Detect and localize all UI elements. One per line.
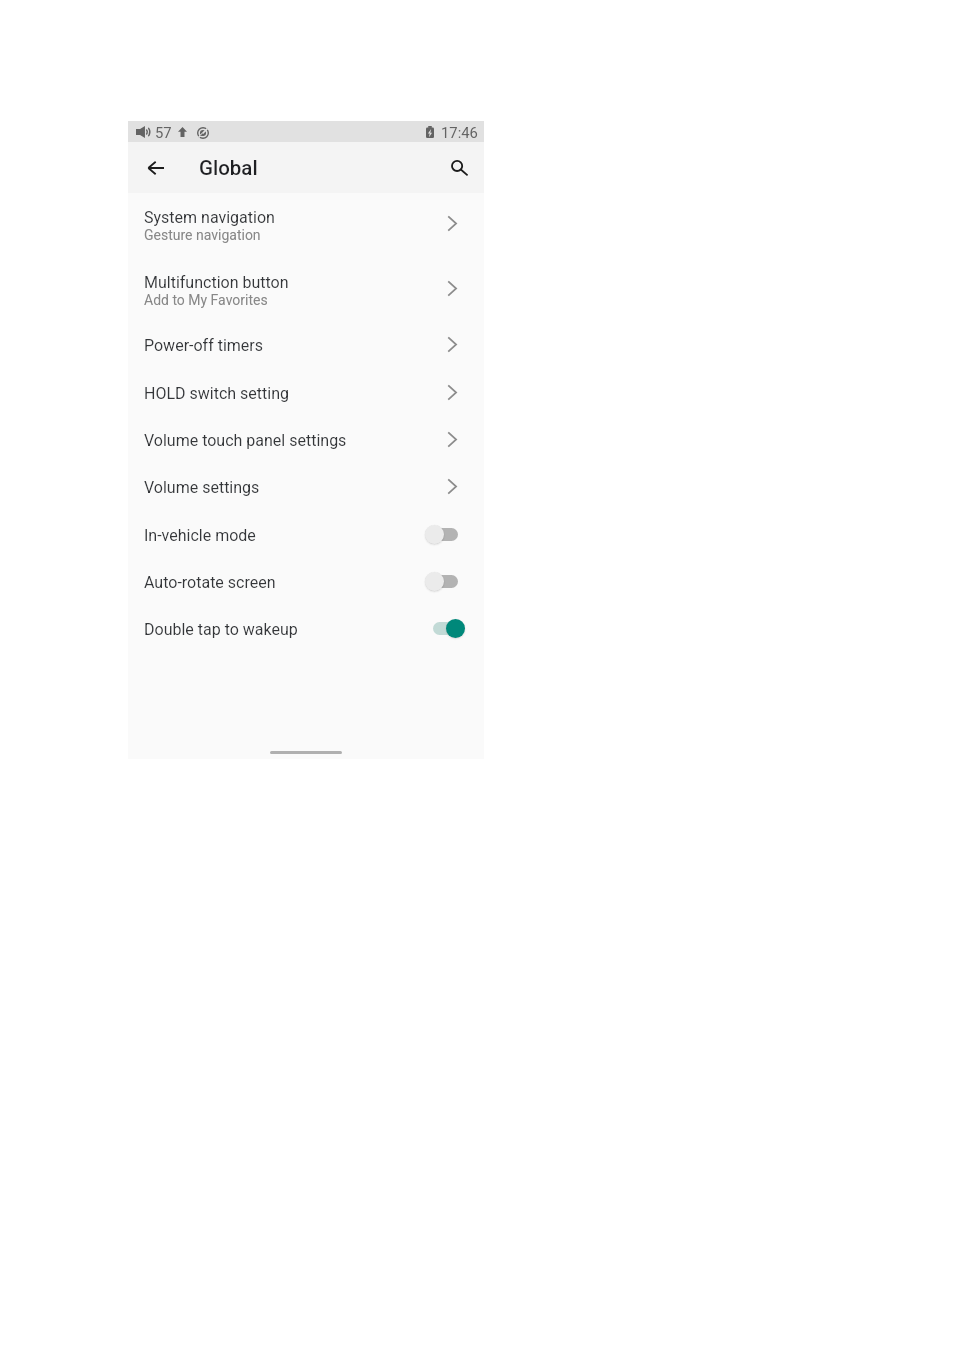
staticText: Volume touch panel settings	[144, 431, 347, 450]
staticText: Multifunction button	[144, 273, 289, 292]
button[interactable]: Volume touch panel settings	[128, 422, 484, 469]
button[interactable]: Double tap to wakeup	[425, 619, 465, 638]
button[interactable]: Navigate up	[136, 148, 176, 188]
button[interactable]: In-vehicle mode	[128, 517, 484, 564]
button[interactable]: System navigation	[128, 194, 484, 258]
button[interactable]: Auto-rotate screen	[425, 572, 465, 591]
staticText: Global	[199, 156, 258, 180]
staticText: In-vehicle mode	[144, 526, 256, 545]
button[interactable]: Double tap to wakeup	[128, 611, 484, 658]
staticText: 17:46	[441, 124, 478, 141]
staticText: HOLD switch setting	[144, 384, 289, 403]
button[interactable]: Volume settings	[128, 469, 484, 516]
staticText: Power-off timers	[144, 336, 264, 355]
staticText: Auto-rotate screen	[144, 573, 276, 592]
staticText: Double tap to wakeup	[144, 620, 298, 639]
button[interactable]: In-vehicle mode	[425, 525, 465, 544]
staticText: Gesture navigation	[144, 227, 261, 243]
button[interactable]: Multifunction button	[128, 259, 484, 323]
button[interactable]: Auto-rotate screen	[128, 564, 484, 611]
button[interactable]: HOLD switch setting	[128, 375, 484, 422]
staticText: Volume settings	[144, 478, 260, 497]
staticText: System navigation	[144, 208, 275, 227]
button[interactable]: Search	[439, 148, 479, 188]
button[interactable]: Power-off timers	[128, 327, 484, 374]
staticText: Add to My Favorites	[144, 292, 268, 308]
staticText: 57	[155, 124, 172, 141]
